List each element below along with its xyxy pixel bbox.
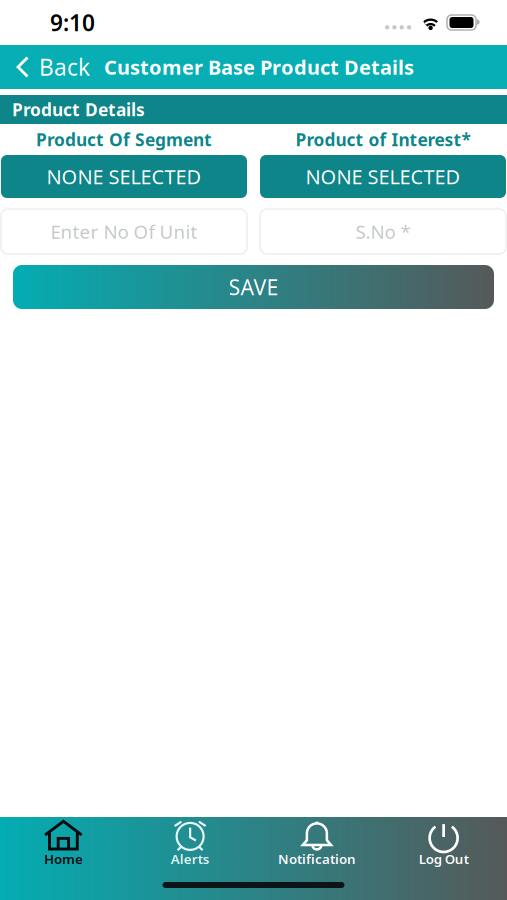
button[interactable]: NONE SELECTED [260,155,506,198]
staticText: SAVE [228,273,278,301]
button[interactable]: S.No * [260,209,506,254]
staticText: Back [39,52,90,82]
button[interactable]: Notification [253,817,380,869]
staticText: Alerts [171,850,210,868]
button[interactable]: Enter No Of Unit [1,209,247,254]
button[interactable]: Alerts [127,817,254,869]
button[interactable]: Back [0,45,97,89]
staticText: Product of Interest* [295,128,470,151]
button[interactable]: Log Out [380,817,507,869]
staticText: Log Out [419,850,469,868]
staticText: NONE SELECTED [46,163,201,190]
staticText: Product Details [12,98,145,121]
staticText: Product Of Segment [36,128,212,151]
staticText: Notification [278,850,356,868]
staticText: Customer Base Product Details [104,54,414,80]
button[interactable]: SAVE [13,265,494,309]
staticText: Enter No Of Unit [50,219,197,244]
staticText: 9:10 [50,7,95,37]
staticText: S.No * [355,219,410,244]
button[interactable]: Home [0,817,127,869]
button[interactable]: NONE SELECTED [1,155,247,198]
staticText: Home [44,850,83,868]
staticText: NONE SELECTED [305,163,460,190]
